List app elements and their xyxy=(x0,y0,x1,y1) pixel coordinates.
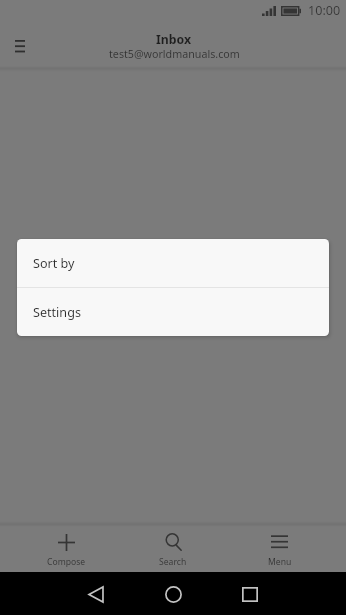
staticText: test5@worldmanuals.com xyxy=(109,47,240,62)
staticText: Menu xyxy=(268,556,292,568)
staticText: Compose xyxy=(47,556,86,568)
button[interactable]: Recents xyxy=(228,572,272,615)
button[interactable]: Navigation menu xyxy=(0,25,40,65)
staticText: Settings xyxy=(33,304,81,321)
staticText: Inbox xyxy=(156,31,192,48)
button[interactable]: Compose xyxy=(13,524,119,572)
button[interactable]: Back xyxy=(74,572,118,615)
button[interactable]: Menu xyxy=(226,524,333,572)
staticText: 10:00 xyxy=(308,2,341,19)
button[interactable]: Home xyxy=(151,572,195,615)
button[interactable]: Settings xyxy=(17,288,329,336)
button[interactable]: Sort by xyxy=(17,239,329,287)
button[interactable]: Search xyxy=(119,524,226,572)
staticText: Search xyxy=(159,556,187,568)
staticText: Sort by xyxy=(33,255,75,272)
